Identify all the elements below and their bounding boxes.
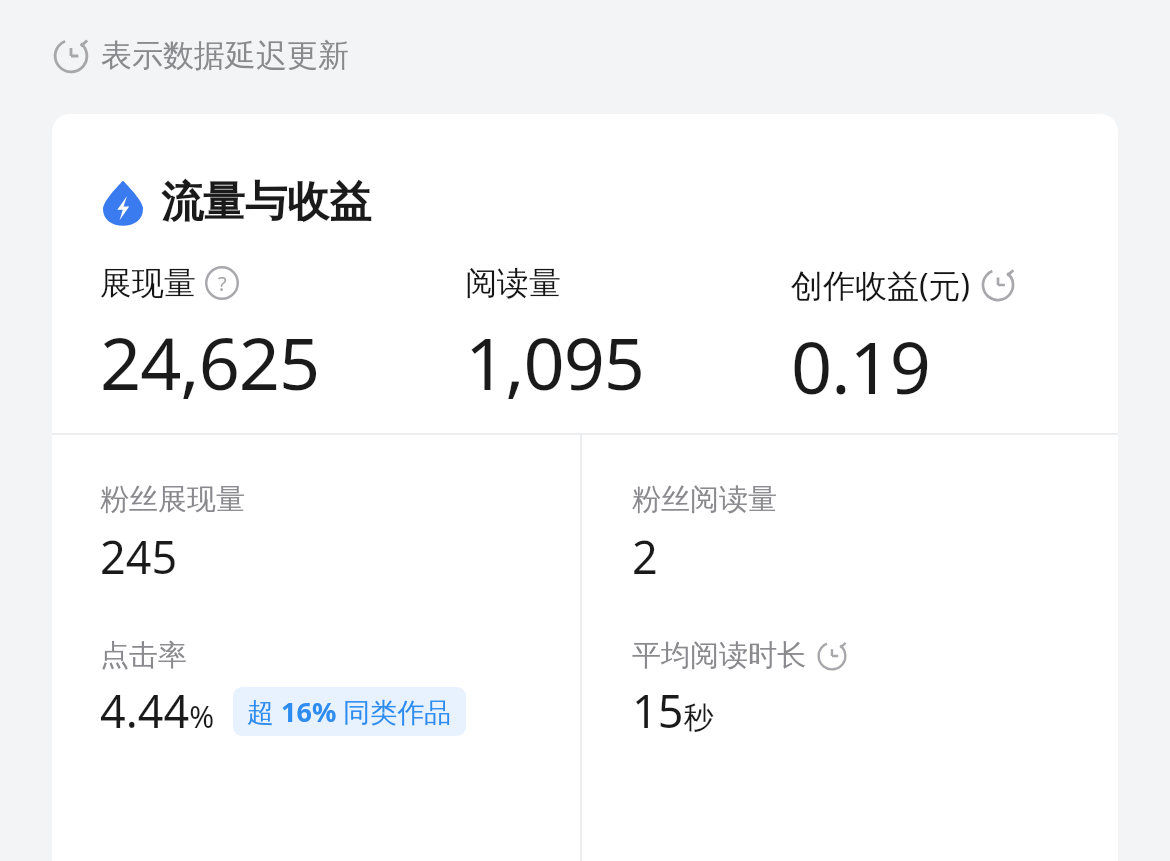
button[interactable]: 阅读量 xyxy=(465,263,645,411)
staticText: 24,625 xyxy=(100,313,320,411)
staticText: 流量与收益 xyxy=(161,176,371,229)
button[interactable]: 创作收益(元) xyxy=(791,263,1016,415)
staticText: 阅读量 xyxy=(465,263,561,303)
staticText: 粉丝展现量 xyxy=(100,481,245,518)
staticText: 点击率 xyxy=(100,637,187,674)
staticText: 创作收益(元) xyxy=(791,263,971,307)
other: 数据延迟更新 xyxy=(816,640,848,672)
button[interactable]: 超 16% 同类作品 xyxy=(233,687,466,736)
button[interactable]: 流量与收益 xyxy=(100,176,371,229)
staticText: 超 16% 同类作品 xyxy=(247,693,452,730)
staticText: 15秒 xyxy=(632,680,714,741)
staticText: 1,095 xyxy=(465,313,645,411)
staticText: 表示数据延迟更新 xyxy=(101,36,349,75)
button[interactable]: 展现量 xyxy=(100,263,320,411)
staticText: 0.19 xyxy=(791,317,930,415)
staticText: 粉丝阅读量 xyxy=(632,481,777,518)
button[interactable]: 表示数据延迟更新 xyxy=(50,34,351,77)
button[interactable]: 平均阅读时长 xyxy=(632,637,848,674)
staticText: 平均阅读时长 xyxy=(632,637,806,674)
staticText: 4.44% xyxy=(100,680,215,741)
button[interactable]: 粉丝阅读量 xyxy=(632,481,777,518)
staticText: 245 xyxy=(100,526,178,587)
button[interactable]: 粉丝展现量 xyxy=(100,481,245,518)
other: 说明 xyxy=(205,266,239,300)
staticText: 2 xyxy=(632,526,658,587)
button[interactable]: 点击率 xyxy=(100,637,187,674)
staticText: 展现量 xyxy=(100,263,196,303)
other: 说明 xyxy=(980,267,1016,303)
staticText: ? xyxy=(218,270,227,297)
